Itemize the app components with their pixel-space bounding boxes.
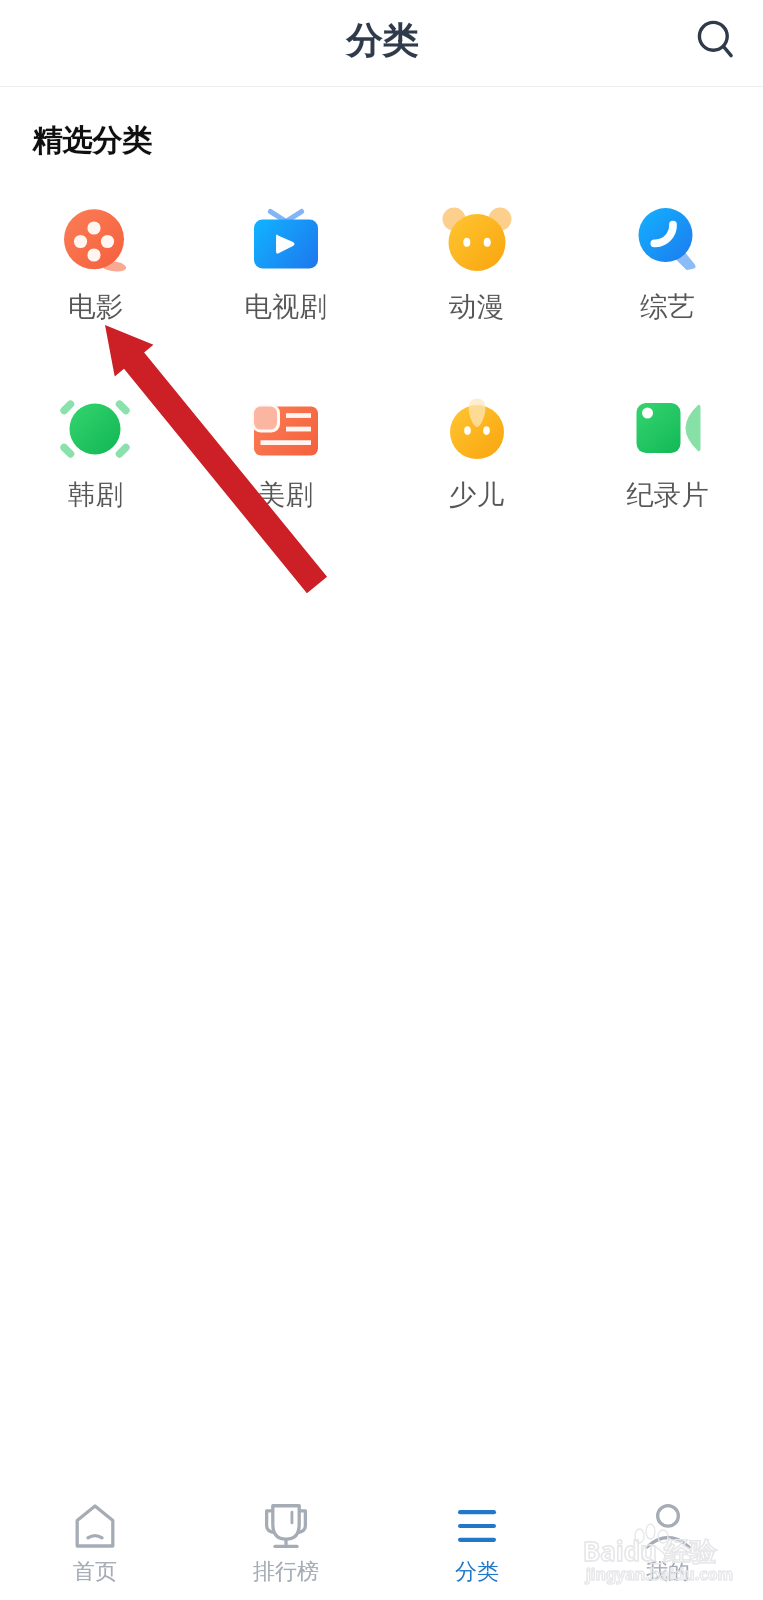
staticText: Baidu 经验 (583, 1533, 716, 1569)
staticText: 动漫 (449, 290, 504, 325)
staticText: 排行榜 (253, 1558, 319, 1586)
staticText: 分类 (455, 1558, 499, 1586)
staticText: 电视剧 (244, 290, 327, 325)
staticText: 美剧 (258, 478, 313, 513)
button[interactable]: 纪录片 (572, 394, 763, 513)
button[interactable]: 首页 (0, 1492, 190, 1600)
button[interactable]: 综艺 (572, 206, 763, 325)
staticText: 韩剧 (68, 478, 123, 513)
staticText: 我的 (646, 1558, 690, 1586)
staticText: 少儿 (449, 478, 504, 513)
button[interactable]: 分类 (381, 1492, 572, 1600)
button[interactable]: 电影 (0, 206, 190, 325)
button[interactable]: 电视剧 (190, 206, 381, 325)
staticText: 综艺 (640, 290, 695, 325)
staticText: 分类 (346, 18, 418, 63)
button[interactable]: 我的 (572, 1492, 763, 1600)
button[interactable]: 美剧 (190, 394, 381, 513)
staticText: 电影 (68, 290, 123, 325)
button[interactable]: 排行榜 (190, 1492, 381, 1600)
button[interactable]: 动漫 (381, 206, 572, 325)
button[interactable]: Search (683, 6, 751, 74)
staticText: 纪录片 (626, 478, 709, 513)
button[interactable]: 少儿 (381, 394, 572, 513)
staticText: 精选分类 (32, 122, 152, 160)
button[interactable]: 韩剧 (0, 394, 190, 513)
staticText: 首页 (73, 1558, 117, 1586)
staticText: jingyan.baidu.com (586, 1563, 734, 1585)
